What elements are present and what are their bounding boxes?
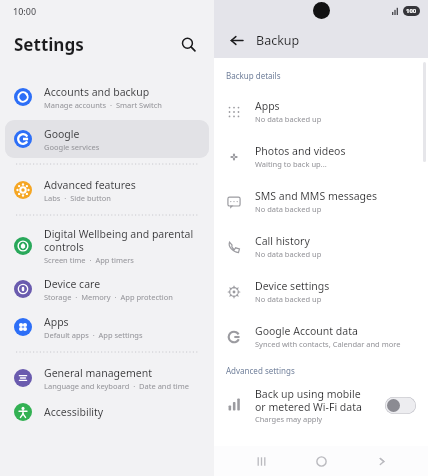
button[interactable]: Call history: [214, 224, 428, 269]
staticText: Advanced settings: [226, 365, 295, 376]
button[interactable]: Advanced features: [5, 171, 209, 209]
staticText: General management: [44, 366, 152, 380]
staticText: Accessibility: [44, 405, 104, 419]
staticText: Settings: [14, 33, 84, 56]
staticText: Backup details: [226, 70, 281, 81]
staticText: No data backed up: [255, 204, 322, 214]
button[interactable]: Back: [222, 25, 304, 55]
staticText: Backup: [256, 32, 300, 49]
staticText: Google: [44, 127, 80, 141]
button[interactable]: Device care: [5, 270, 209, 308]
button[interactable]: General management: [5, 359, 209, 397]
staticText: 100: [406, 7, 417, 15]
staticText: Apps: [255, 99, 280, 113]
button[interactable]: Apps: [5, 308, 209, 346]
staticText: Waiting to back up...: [255, 159, 327, 169]
button[interactable]: Back: [368, 447, 396, 475]
staticText: No data backed up: [255, 114, 322, 124]
staticText: Storage · Memory · App protection: [44, 292, 173, 302]
other: Back: [226, 30, 246, 50]
staticText: Back up using mobile or metered Wi-Fi da…: [255, 387, 362, 414]
staticText: Photos and videos: [255, 144, 346, 158]
button[interactable]: Back up using mobile or metered Wi-Fi da…: [214, 382, 428, 428]
button[interactable]: Google Account data: [214, 314, 428, 359]
staticText: Synced with contacts, Calendar and more: [255, 339, 401, 349]
staticText: Apps: [44, 315, 69, 329]
staticText: Manage accounts · Smart Switch: [44, 100, 162, 110]
staticText: No data backed up: [255, 294, 322, 304]
button[interactable]: Accessibility: [5, 397, 209, 427]
staticText: Accounts and backup: [44, 85, 150, 99]
staticText: Charges may apply: [255, 414, 323, 424]
staticText: Google services: [44, 142, 100, 152]
button[interactable]: Apps: [214, 89, 428, 134]
staticText: SMS and MMS messages: [255, 189, 377, 203]
staticText: Language and keyboard · Date and time: [44, 381, 189, 391]
button[interactable]: Recents: [247, 447, 275, 475]
staticText: Call history: [255, 234, 310, 248]
button[interactable]: Google: [5, 120, 209, 158]
button[interactable]: Digital Wellbeing and parental controls: [5, 222, 209, 270]
staticText: No data backed up: [255, 249, 322, 259]
button[interactable]: Home: [307, 447, 335, 475]
button[interactable]: Accounts and backup: [5, 78, 209, 116]
staticText: Device settings: [255, 279, 330, 293]
staticText: Google Account data: [255, 324, 358, 338]
staticText: Screen time · App timers: [44, 255, 134, 265]
button[interactable]: Photos and videos: [214, 134, 428, 179]
button[interactable]: Back up using mobile data toggle: [385, 397, 416, 414]
staticText: Digital Wellbeing and parental controls: [44, 227, 194, 254]
button[interactable]: Device settings: [214, 269, 428, 314]
button[interactable]: Search: [174, 30, 202, 58]
staticText: Labs · Side button: [44, 193, 111, 203]
staticText: Default apps · App settings: [44, 330, 143, 340]
staticText: Device care: [44, 277, 101, 291]
staticText: Advanced features: [44, 178, 136, 192]
staticText: 10:00: [13, 5, 37, 17]
button[interactable]: SMS and MMS messages: [214, 179, 428, 224]
